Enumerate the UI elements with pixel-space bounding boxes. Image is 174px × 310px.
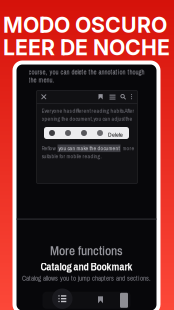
staticText: more xyxy=(122,144,134,152)
staticText: Reflow xyxy=(41,144,55,152)
staticText: suitable for mobile reading. xyxy=(41,152,101,160)
staticText: you can make the document xyxy=(57,144,120,152)
staticText: MODO OSCURO xyxy=(3,12,167,38)
staticText: Delete xyxy=(108,130,123,139)
staticText: opening the document, you can adjust the xyxy=(41,115,132,122)
staticText: LEER DE NOCHE xyxy=(3,34,170,60)
staticText: Catalog and Bookmark xyxy=(40,259,132,274)
staticText: Everyone has different reading habits.Af… xyxy=(41,107,134,114)
staticText: More functions xyxy=(50,241,123,259)
staticText: Catalog allows you to jump chapters and … xyxy=(22,273,151,283)
staticText: the menu. xyxy=(28,75,54,84)
staticText: course, you can delete the annotation th… xyxy=(28,67,144,76)
